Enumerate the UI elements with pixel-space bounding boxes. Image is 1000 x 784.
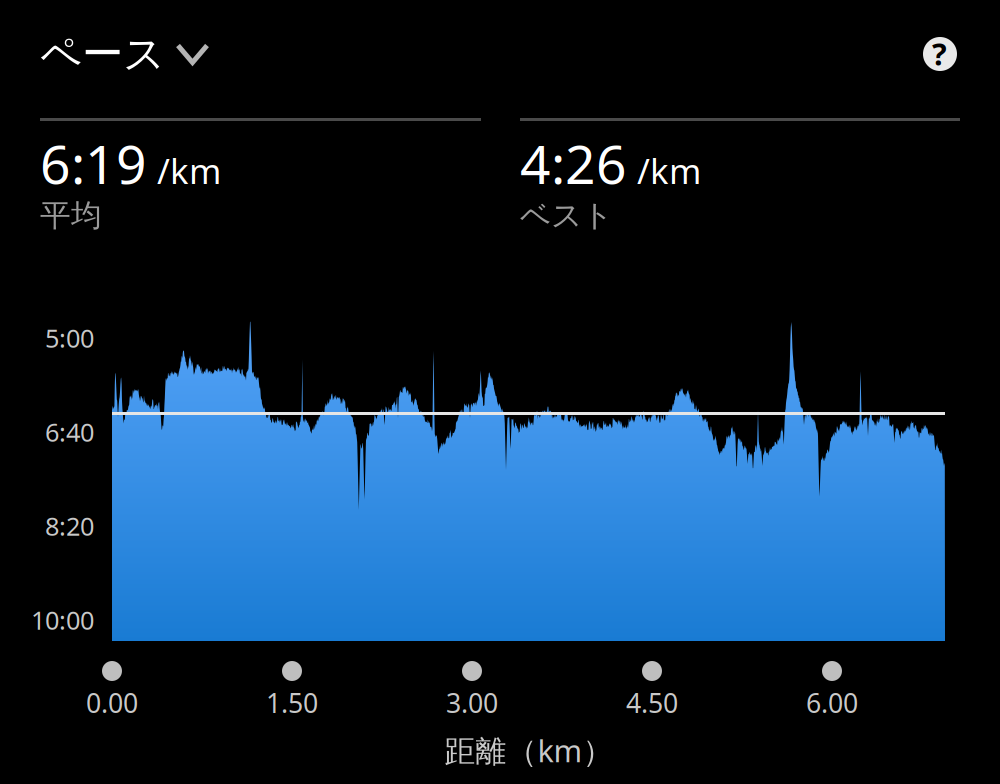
staticText: 4:26 xyxy=(520,128,627,199)
staticText: ベスト xyxy=(520,197,613,234)
staticText: /km xyxy=(637,148,701,194)
staticText: 10:00 xyxy=(31,603,94,637)
staticText: 1.50 xyxy=(266,685,318,720)
staticText: 4.50 xyxy=(626,685,678,720)
staticText: 6:40 xyxy=(45,415,94,449)
staticText: ペース xyxy=(40,29,165,79)
staticText: 6:19 xyxy=(40,128,147,199)
staticText: /km xyxy=(157,148,221,194)
staticText: 6.00 xyxy=(806,685,858,720)
staticText: 距離（km） xyxy=(444,730,613,771)
staticText: 3.00 xyxy=(446,685,498,720)
staticText: 8:20 xyxy=(45,509,94,543)
staticText: ? xyxy=(932,33,947,74)
button[interactable]: ペース xyxy=(40,29,207,79)
button[interactable]: Help xyxy=(923,34,957,74)
staticText: 平均 xyxy=(40,197,102,234)
staticText: 5:00 xyxy=(45,321,94,355)
staticText: 0.00 xyxy=(86,685,138,720)
